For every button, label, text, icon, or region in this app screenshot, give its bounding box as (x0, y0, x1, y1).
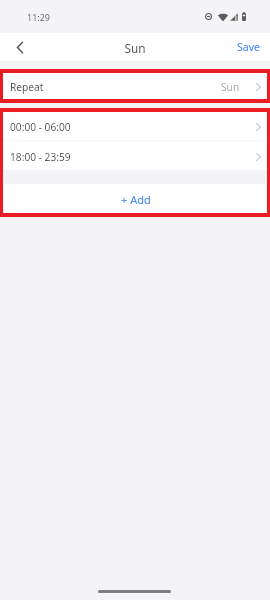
staticText: Save (237, 40, 260, 54)
button[interactable]: Save (225, 33, 270, 61)
button[interactable]: Back (0, 33, 40, 61)
staticText: Repeat (10, 80, 44, 94)
staticText: 00:00 - 06:00 (10, 120, 71, 134)
button[interactable]: 00:00 - 06:00 (3, 112, 267, 140)
staticText: Sun (221, 80, 240, 94)
button[interactable]: 18:00 - 23:59 (3, 141, 267, 170)
staticText: Sun (124, 40, 146, 56)
staticText: 18:00 - 23:59 (10, 150, 71, 164)
staticText: 11:29 (27, 11, 51, 23)
button[interactable]: Repeat (3, 73, 267, 99)
button[interactable]: + Add (3, 184, 267, 212)
staticText: + Add (121, 192, 151, 207)
